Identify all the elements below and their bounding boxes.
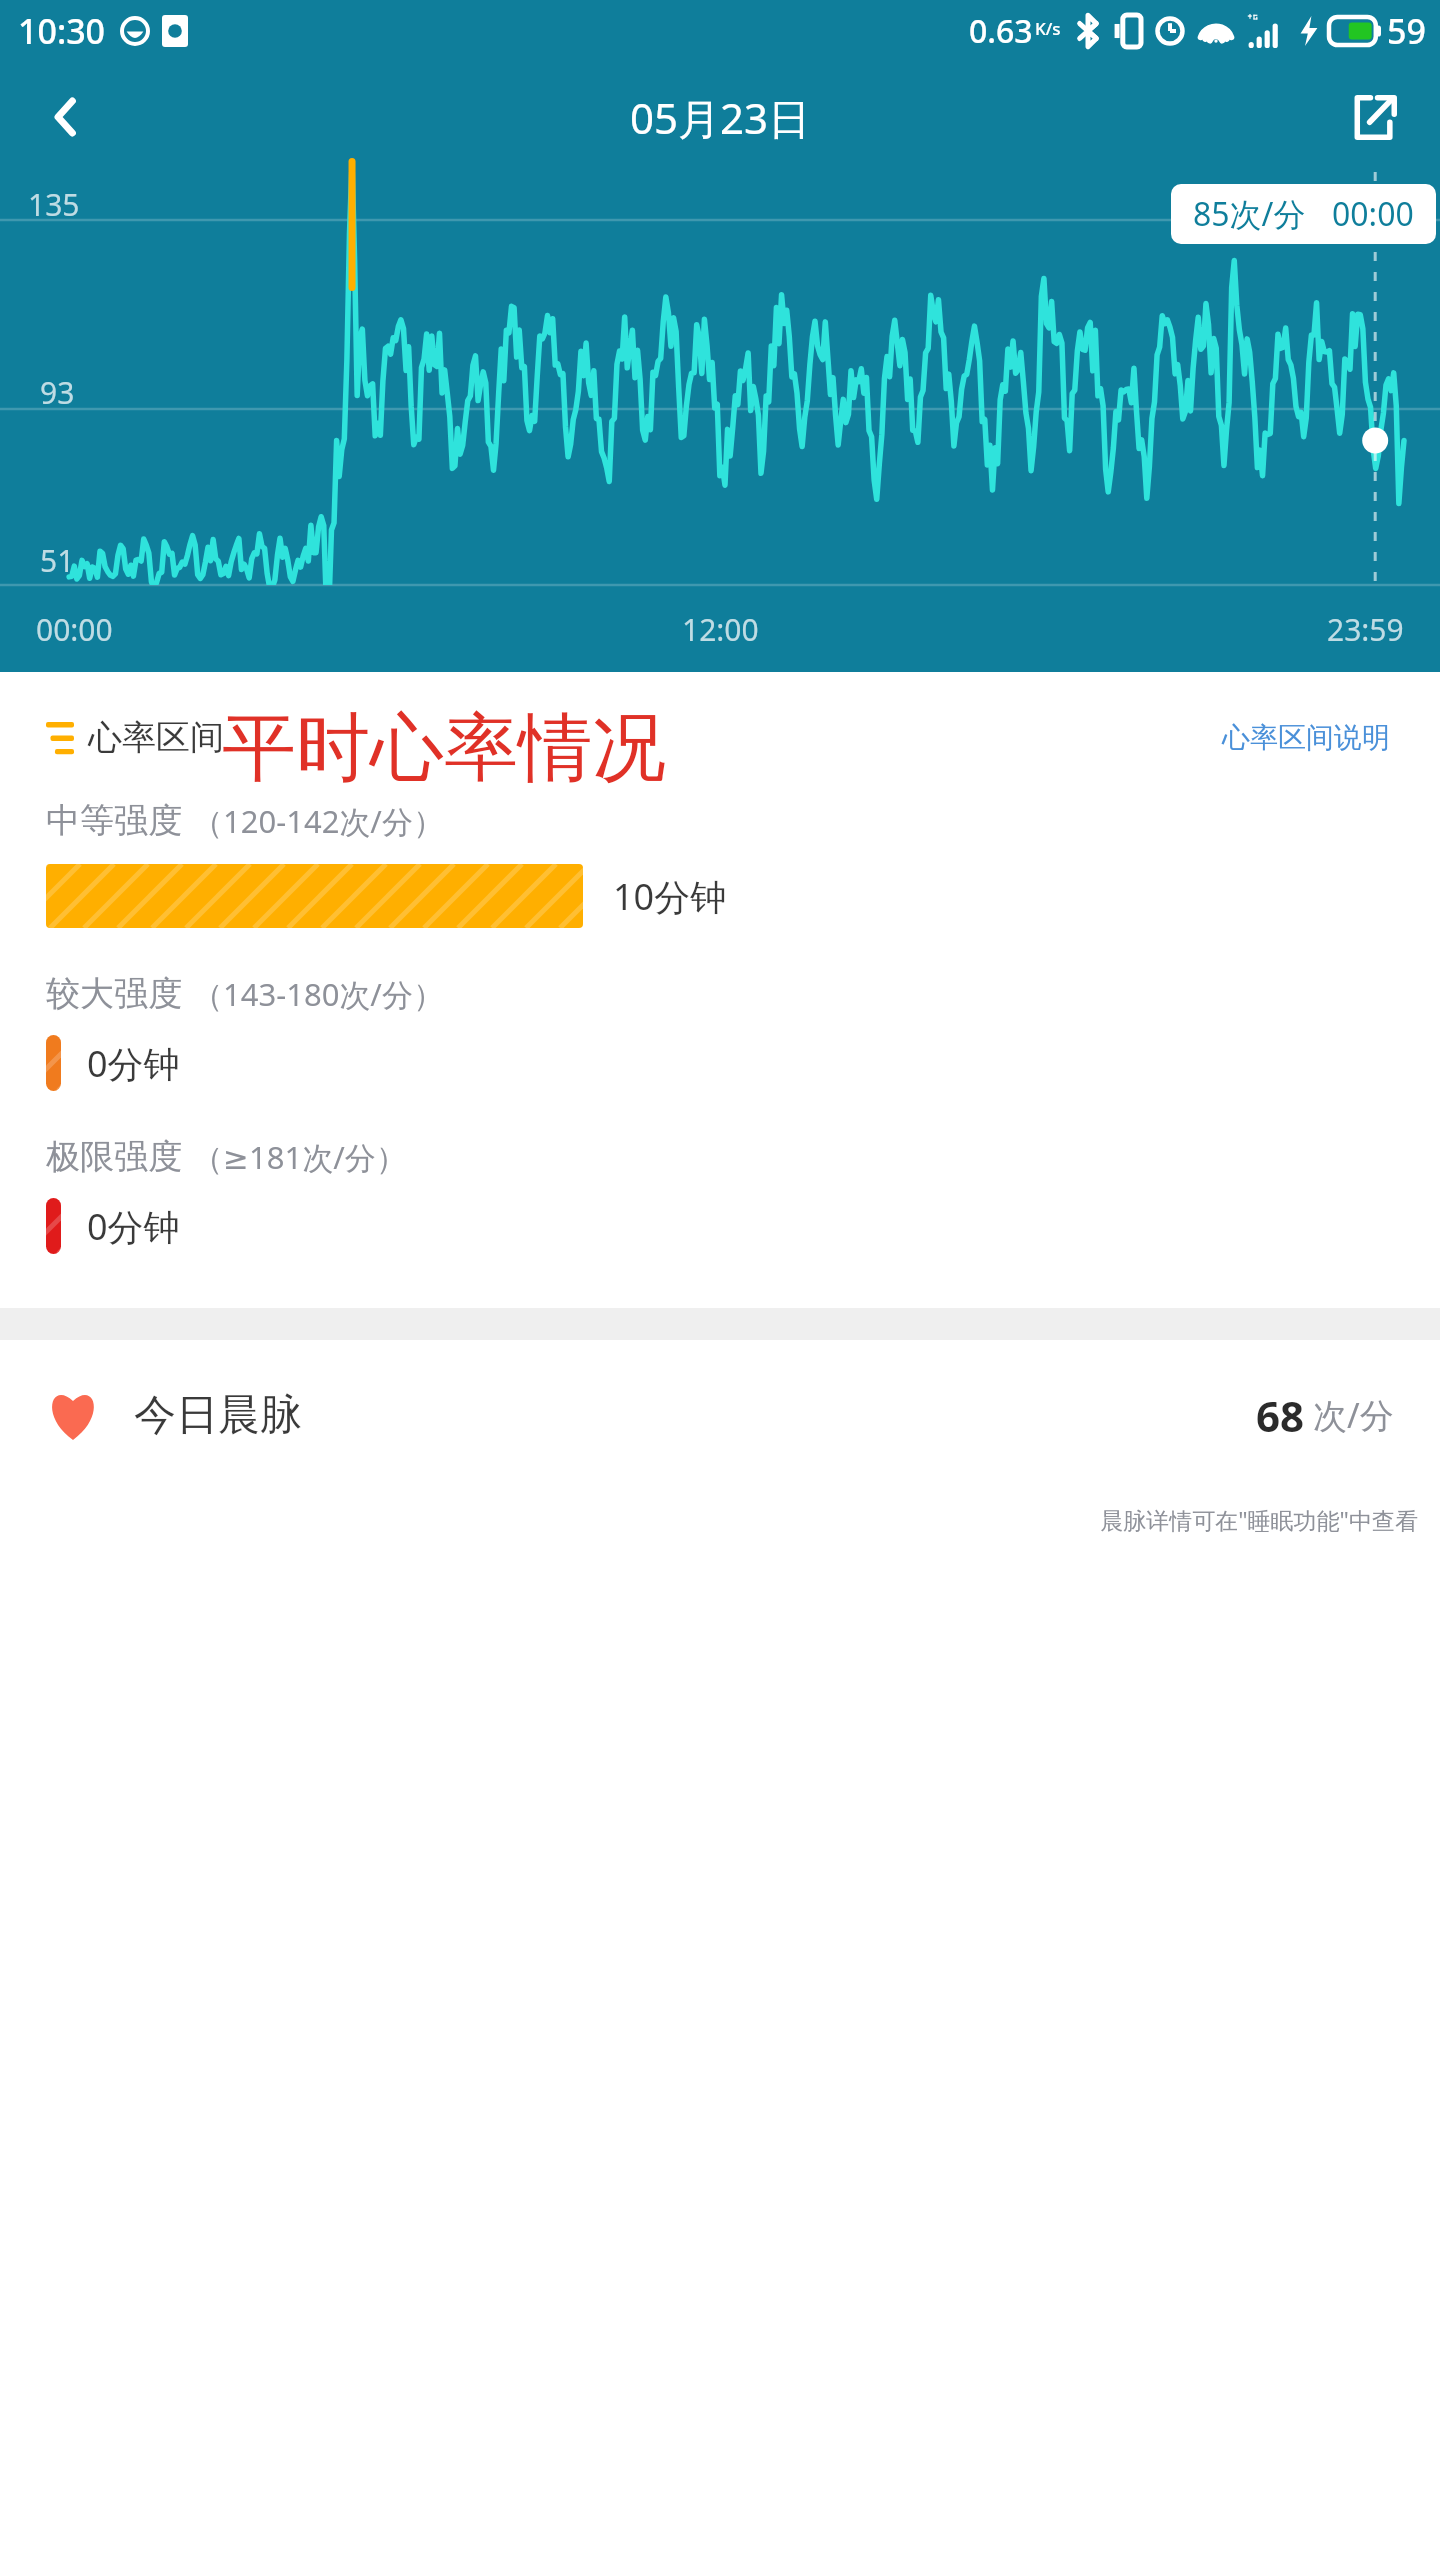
staticText: 85次/分 xyxy=(1193,192,1306,236)
staticText: 23:59 xyxy=(1327,609,1404,650)
staticText: 51 xyxy=(40,540,75,581)
staticText: 0分钟 xyxy=(87,1202,180,1251)
staticText: 极限强度 xyxy=(46,1135,182,1178)
staticText: 05月23日 xyxy=(630,89,811,146)
staticText: 0分钟 xyxy=(87,1039,180,1088)
staticText: （≥181次/分） xyxy=(192,1136,407,1178)
staticText: 00:00 xyxy=(1332,192,1414,236)
button[interactable]: 心率区间说明 xyxy=(1218,716,1394,759)
staticText: 93 xyxy=(40,372,75,413)
button[interactable]: 85次/分 xyxy=(1171,184,1436,244)
staticText: 68 xyxy=(1256,1387,1305,1444)
staticText: （120-142次/分） xyxy=(192,800,444,842)
staticText: K/s xyxy=(1035,17,1061,40)
staticText: 00:00 xyxy=(36,609,113,650)
staticText: 心率区间说明 xyxy=(1222,720,1390,755)
staticText: 次/分 xyxy=(1313,1392,1394,1438)
staticText: 晨脉详情可在"睡眠功能"中查看 xyxy=(0,1504,1418,1535)
staticText: 59 xyxy=(1387,8,1426,54)
staticText: 10:30 xyxy=(18,8,106,54)
staticText: 心率区间 xyxy=(88,716,224,759)
staticText: 12:00 xyxy=(682,609,759,650)
staticText: 今日晨脉 xyxy=(134,1389,302,1442)
staticText: 较大强度 xyxy=(46,972,182,1015)
staticText: 135 xyxy=(28,184,80,225)
button[interactable]: Back xyxy=(34,85,98,149)
staticText: 0.63 xyxy=(969,9,1033,53)
staticText: （143-180次/分） xyxy=(192,973,444,1015)
staticText: 10分钟 xyxy=(613,872,727,921)
staticText: 平时心率情况 xyxy=(222,702,666,795)
staticText: 中等强度 xyxy=(46,799,182,842)
button[interactable]: Share xyxy=(1342,85,1406,149)
button[interactable]: 今日晨脉 xyxy=(0,1340,1440,1490)
